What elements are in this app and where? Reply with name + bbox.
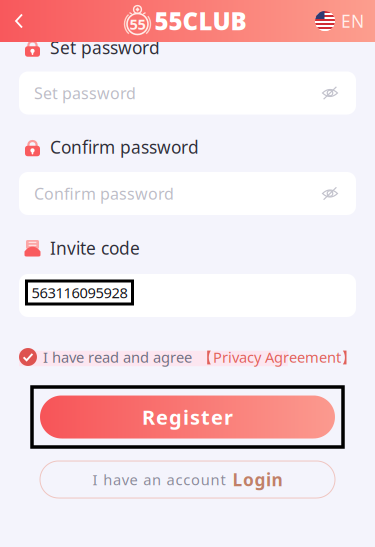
staticText: Register bbox=[142, 404, 233, 430]
staticText: Confirm password bbox=[34, 183, 174, 204]
staticText: 563116095928 bbox=[31, 283, 127, 302]
staticText: EN bbox=[341, 9, 364, 32]
staticText: Invite code bbox=[50, 236, 140, 259]
button[interactable]: Back bbox=[0, 0, 38, 42]
staticText: Set password bbox=[50, 36, 160, 59]
staticText: I have an account bbox=[93, 470, 225, 489]
button[interactable]: Register bbox=[0, 387, 375, 447]
staticText: Login bbox=[232, 468, 282, 491]
staticText: 55 bbox=[129, 14, 145, 34]
button[interactable]: Language: English bbox=[315, 0, 375, 42]
staticText: I have read and agree bbox=[43, 347, 192, 367]
button[interactable]: I have an account bbox=[0, 461, 375, 498]
button[interactable]: I have read and agree bbox=[0, 346, 375, 368]
staticText: Set password bbox=[34, 82, 136, 104]
staticText: 【Privacy Agreement】 bbox=[198, 347, 356, 367]
staticText: Confirm password bbox=[50, 135, 199, 158]
staticText: 55CLUB bbox=[154, 5, 246, 37]
